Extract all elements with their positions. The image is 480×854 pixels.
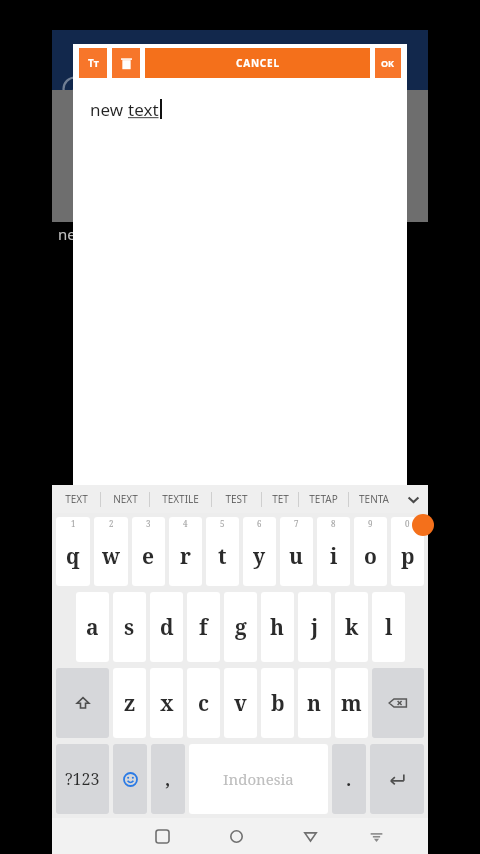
- staticText: 1: [71, 518, 76, 529]
- button[interactable]: 3: [132, 517, 165, 586]
- staticText: NEXT: [113, 492, 138, 506]
- staticText: y: [253, 542, 266, 571]
- button[interactable]: a: [76, 592, 109, 662]
- staticText: m: [341, 689, 362, 718]
- staticText: 0: [405, 518, 410, 529]
- button[interactable]: c: [187, 668, 220, 738]
- button[interactable]: f: [187, 592, 220, 662]
- staticText: q: [66, 542, 80, 571]
- staticText: TEST: [225, 492, 248, 506]
- button[interactable]: Text format: [79, 48, 107, 78]
- staticText: u: [289, 542, 304, 571]
- button[interactable]: Period: [332, 744, 366, 814]
- button[interactable]: Delete: [112, 48, 140, 78]
- button[interactable]: Backspace: [372, 668, 424, 738]
- button[interactable]: z: [113, 668, 146, 738]
- staticText: ?123: [65, 768, 100, 790]
- button[interactable]: 0: [391, 517, 424, 586]
- button[interactable]: 9: [354, 517, 387, 586]
- button[interactable]: TEXTILE: [150, 485, 211, 513]
- staticText: n: [307, 689, 322, 718]
- button[interactable]: TET: [262, 485, 298, 513]
- button[interactable]: Indonesia: [189, 744, 328, 814]
- staticText: x: [160, 689, 174, 718]
- staticText: TEXTILE: [162, 492, 199, 506]
- staticText: TEXT: [65, 492, 88, 506]
- staticText: o: [364, 542, 377, 571]
- staticText: ,: [165, 767, 171, 792]
- staticText: v: [234, 689, 247, 718]
- staticText: w: [102, 542, 120, 571]
- button[interactable]: l: [372, 592, 405, 662]
- button[interactable]: Enter: [370, 744, 424, 814]
- button[interactable]: v: [224, 668, 257, 738]
- staticText: t: [218, 542, 227, 571]
- button[interactable]: TEST: [212, 485, 261, 513]
- staticText: .: [346, 767, 352, 792]
- staticText: new: [90, 98, 128, 121]
- button[interactable]: Shift: [56, 668, 109, 738]
- button[interactable]: 7: [280, 517, 313, 586]
- button[interactable]: s: [113, 592, 146, 662]
- staticText: e: [142, 542, 155, 571]
- staticText: 4: [183, 518, 188, 529]
- button[interactable]: h: [261, 592, 294, 662]
- staticText: p: [401, 542, 415, 571]
- button[interactable]: TENTA: [349, 485, 398, 513]
- staticText: 7: [294, 518, 299, 529]
- button[interactable]: Recents: [125, 818, 199, 854]
- button[interactable]: x: [150, 668, 183, 738]
- staticText: OK: [381, 57, 395, 69]
- button[interactable]: Home: [199, 818, 273, 854]
- button[interactable]: 1: [56, 517, 90, 586]
- button[interactable]: TEXT: [52, 485, 100, 513]
- button[interactable]: j: [298, 592, 331, 662]
- staticText: 9: [368, 518, 373, 529]
- button[interactable]: TETAP: [299, 485, 348, 513]
- staticText: s: [124, 613, 135, 642]
- staticText: text: [128, 98, 159, 121]
- staticText: i: [330, 542, 338, 571]
- button[interactable]: OK: [375, 48, 401, 78]
- button[interactable]: 2: [94, 517, 128, 586]
- button[interactable]: Emoji: [113, 744, 147, 814]
- button[interactable]: NEXT: [101, 485, 149, 513]
- staticText: k: [345, 613, 359, 642]
- button[interactable]: new: [73, 82, 407, 485]
- staticText: Tт: [88, 56, 99, 70]
- staticText: f: [199, 613, 208, 642]
- staticText: r: [180, 542, 191, 571]
- button[interactable]: More suggestions: [398, 485, 428, 513]
- button[interactable]: Back: [273, 818, 347, 854]
- button[interactable]: m: [335, 668, 368, 738]
- button[interactable]: 6: [243, 517, 276, 586]
- staticText: 6: [257, 518, 262, 529]
- button[interactable]: g: [224, 592, 257, 662]
- button[interactable]: 5: [206, 517, 239, 586]
- staticText: TET: [272, 492, 289, 506]
- button[interactable]: 4: [169, 517, 202, 586]
- button[interactable]: b: [261, 668, 294, 738]
- button[interactable]: Hide keyboard: [347, 818, 406, 854]
- staticText: a: [86, 613, 99, 642]
- staticText: z: [124, 689, 136, 718]
- staticText: CANCEL: [236, 56, 280, 70]
- button[interactable]: k: [335, 592, 368, 662]
- staticText: g: [235, 613, 247, 642]
- staticText: Indonesia: [223, 769, 294, 789]
- staticText: 8: [331, 518, 336, 529]
- staticText: ne: [58, 224, 76, 244]
- button[interactable]: 8: [317, 517, 350, 586]
- button[interactable]: n: [298, 668, 331, 738]
- staticText: 5: [220, 518, 225, 529]
- button[interactable]: CANCEL: [145, 48, 370, 78]
- staticText: c: [198, 689, 210, 718]
- staticText: 2: [109, 518, 114, 529]
- button[interactable]: Comma: [151, 744, 185, 814]
- button[interactable]: Symbols: [56, 744, 109, 814]
- button[interactable]: d: [150, 592, 183, 662]
- staticText: TENTA: [359, 492, 389, 506]
- staticText: TETAP: [309, 492, 338, 506]
- staticText: l: [385, 613, 393, 642]
- staticText: j: [311, 613, 319, 642]
